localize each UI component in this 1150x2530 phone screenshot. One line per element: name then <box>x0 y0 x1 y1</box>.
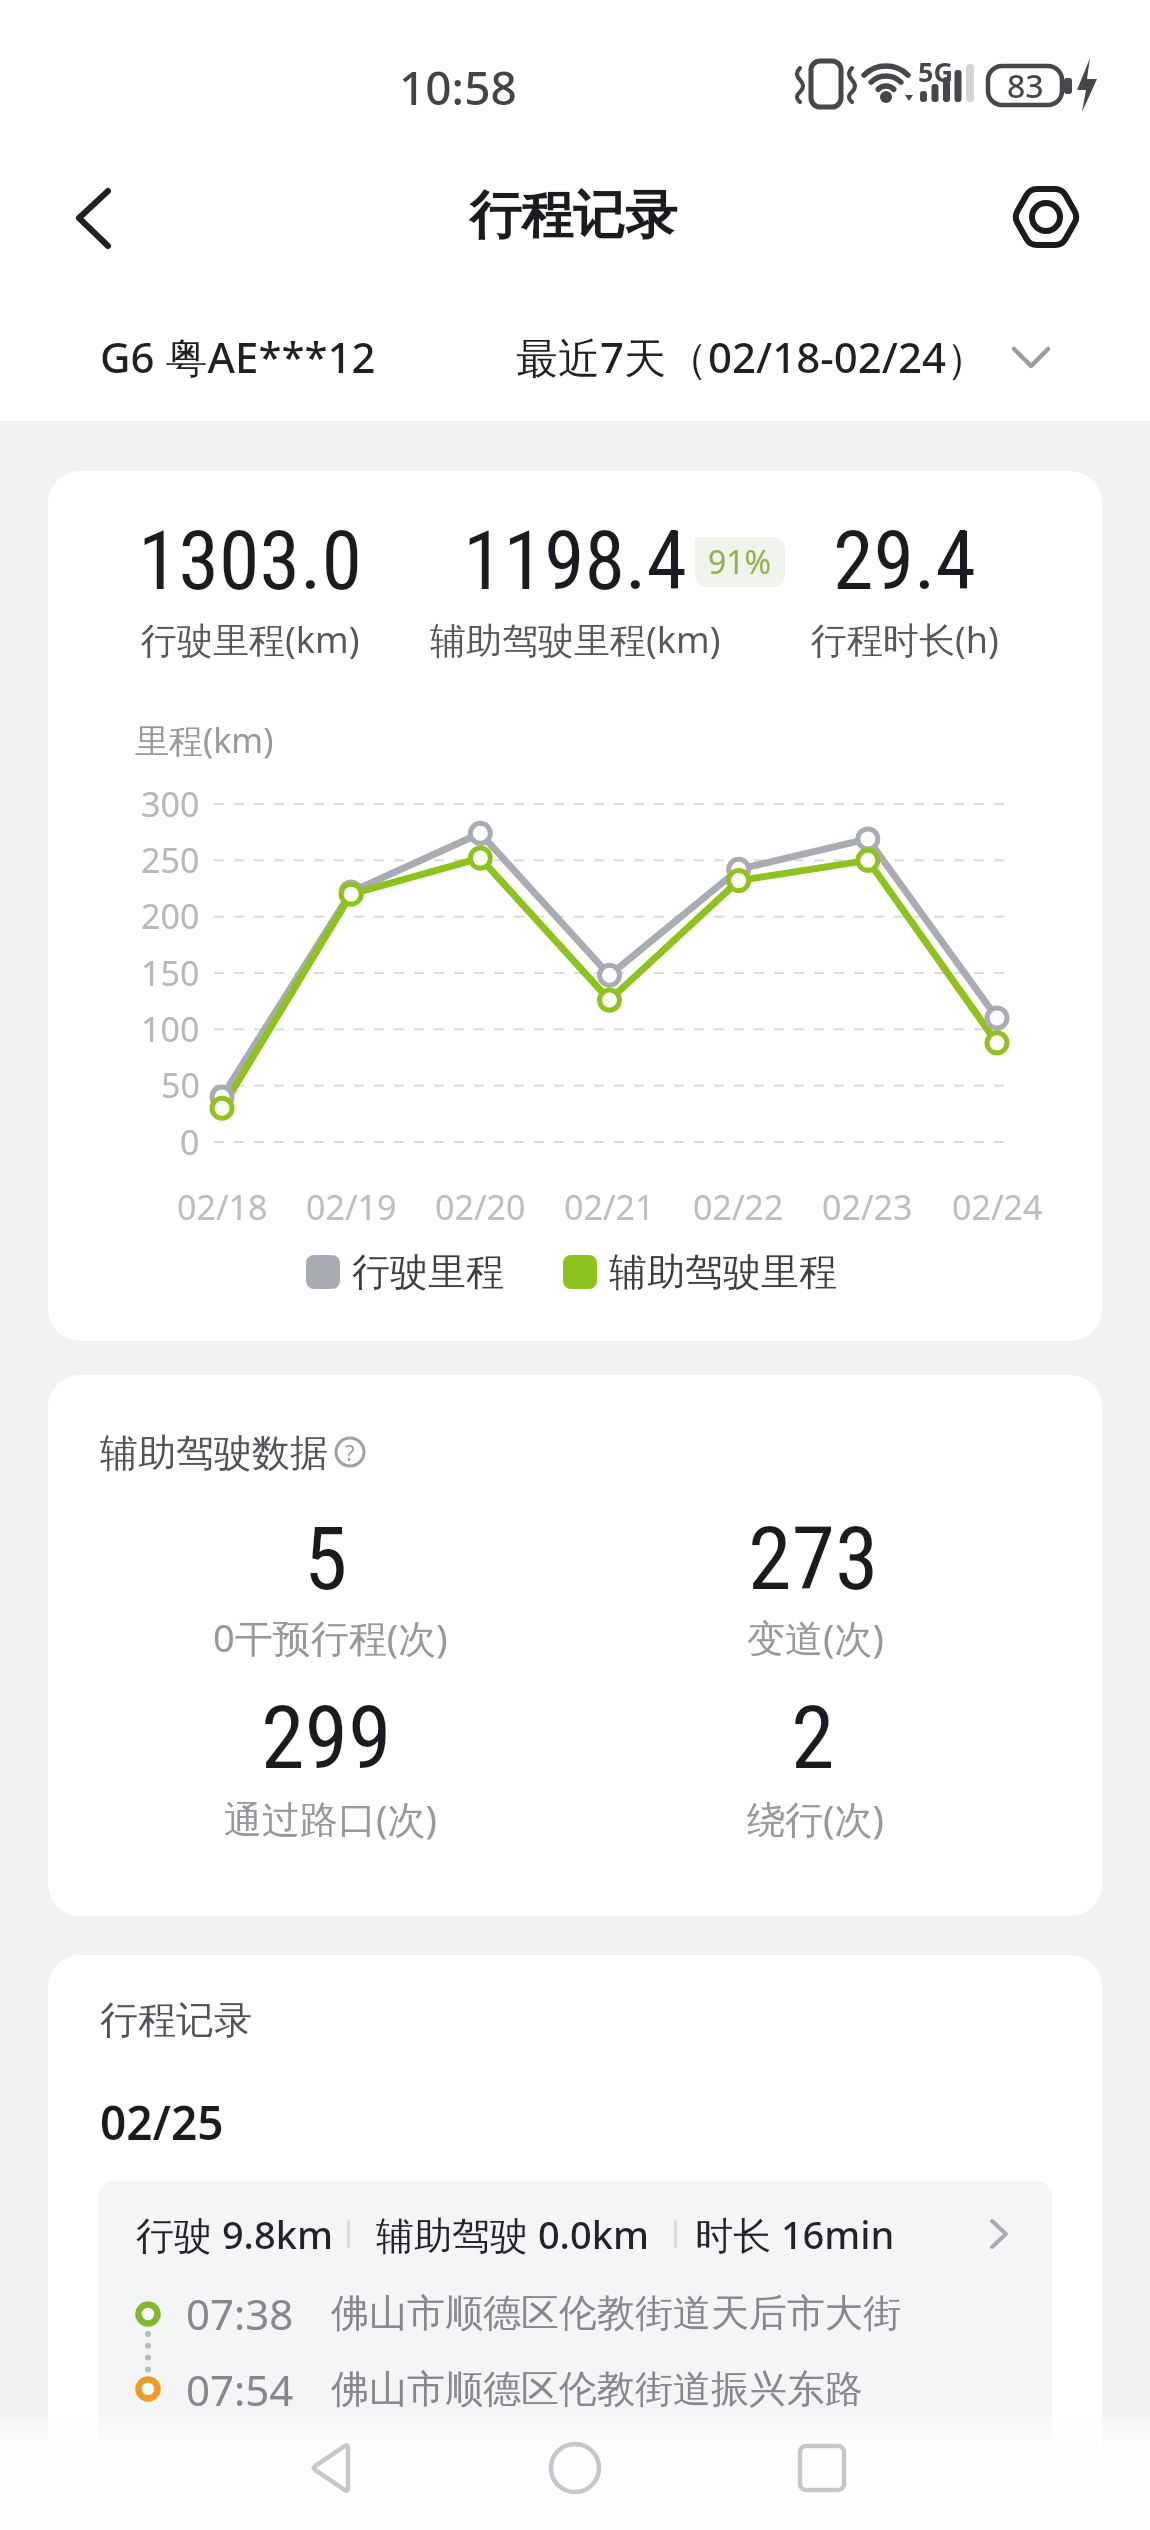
button[interactable] <box>495 315 1065 395</box>
staticText: 273 <box>748 1507 879 1610</box>
staticText: 02/19 <box>306 1184 397 1230</box>
staticText: 2 <box>791 1686 835 1789</box>
staticText: 5G <box>918 53 953 90</box>
button[interactable] <box>1005 178 1089 258</box>
staticText: 行程记录 <box>100 1996 252 2044</box>
staticText: 行程记录 <box>469 183 677 249</box>
staticText: 行驶里程(km) <box>141 615 360 664</box>
staticText: 佛山市顺德区伦教街道振兴东路 <box>331 2365 863 2413</box>
staticText: 07:38 <box>186 2285 294 2342</box>
staticText: ? <box>345 1437 355 1467</box>
staticText: 行驶里程 <box>352 1248 504 1296</box>
staticText: 07:54 <box>186 2361 294 2418</box>
staticText: 里程(km) <box>135 717 274 763</box>
staticText: 5 <box>304 1507 348 1610</box>
staticText: 91% <box>708 540 772 584</box>
staticText: 变道(次) <box>747 1611 884 1663</box>
staticText: 1198.4 <box>463 513 688 609</box>
staticText: 辅助驾驶数据 <box>100 1429 328 1477</box>
staticText: 辅助驾驶里程 <box>609 1248 837 1296</box>
staticText: 83 <box>1007 64 1044 108</box>
staticText: 250 <box>141 837 200 883</box>
staticText: 299 <box>261 1686 392 1789</box>
staticText: 1303.0 <box>138 513 363 609</box>
staticText: 200 <box>141 893 200 939</box>
staticText: 行驶 9.8km <box>136 2208 333 2260</box>
staticText: 02/24 <box>952 1184 1043 1230</box>
staticText: 300 <box>141 781 200 827</box>
staticText: 150 <box>141 950 200 996</box>
staticText: 02/22 <box>693 1184 784 1230</box>
staticText: 佛山市顺德区伦教街道天后市大街 <box>331 2289 901 2337</box>
staticText: 时长 16min <box>695 2208 895 2260</box>
staticText: 0 <box>180 1119 200 1165</box>
staticText: 02/23 <box>822 1184 913 1230</box>
button[interactable] <box>55 178 135 258</box>
staticText: 02/20 <box>435 1184 526 1230</box>
staticText: 行程时长(h) <box>811 615 999 664</box>
button[interactable] <box>80 315 420 395</box>
staticText: 通过路口(次) <box>224 1792 437 1844</box>
staticText: 辅助驾驶里程(km) <box>430 615 721 664</box>
button[interactable] <box>780 2430 860 2510</box>
staticText: 50 <box>161 1062 200 1108</box>
staticText: 02/25 <box>100 2091 224 2154</box>
button[interactable] <box>290 2430 370 2510</box>
staticText: 29.4 <box>833 513 977 609</box>
staticText: 100 <box>141 1006 200 1052</box>
staticText: 辅助驾驶 0.0km <box>376 2208 649 2260</box>
staticText: G6 粤AE***12 <box>100 328 376 385</box>
staticText: 最近7天（02/18-02/24） <box>516 328 989 385</box>
staticText: 0干预行程(次) <box>213 1611 448 1663</box>
staticText: 02/21 <box>564 1184 655 1230</box>
staticText: 绕行(次) <box>747 1792 884 1844</box>
button[interactable] <box>98 2181 1052 2530</box>
staticText: 02/18 <box>177 1184 268 1230</box>
staticText: 10:58 <box>399 56 517 119</box>
button[interactable] <box>535 2430 615 2510</box>
